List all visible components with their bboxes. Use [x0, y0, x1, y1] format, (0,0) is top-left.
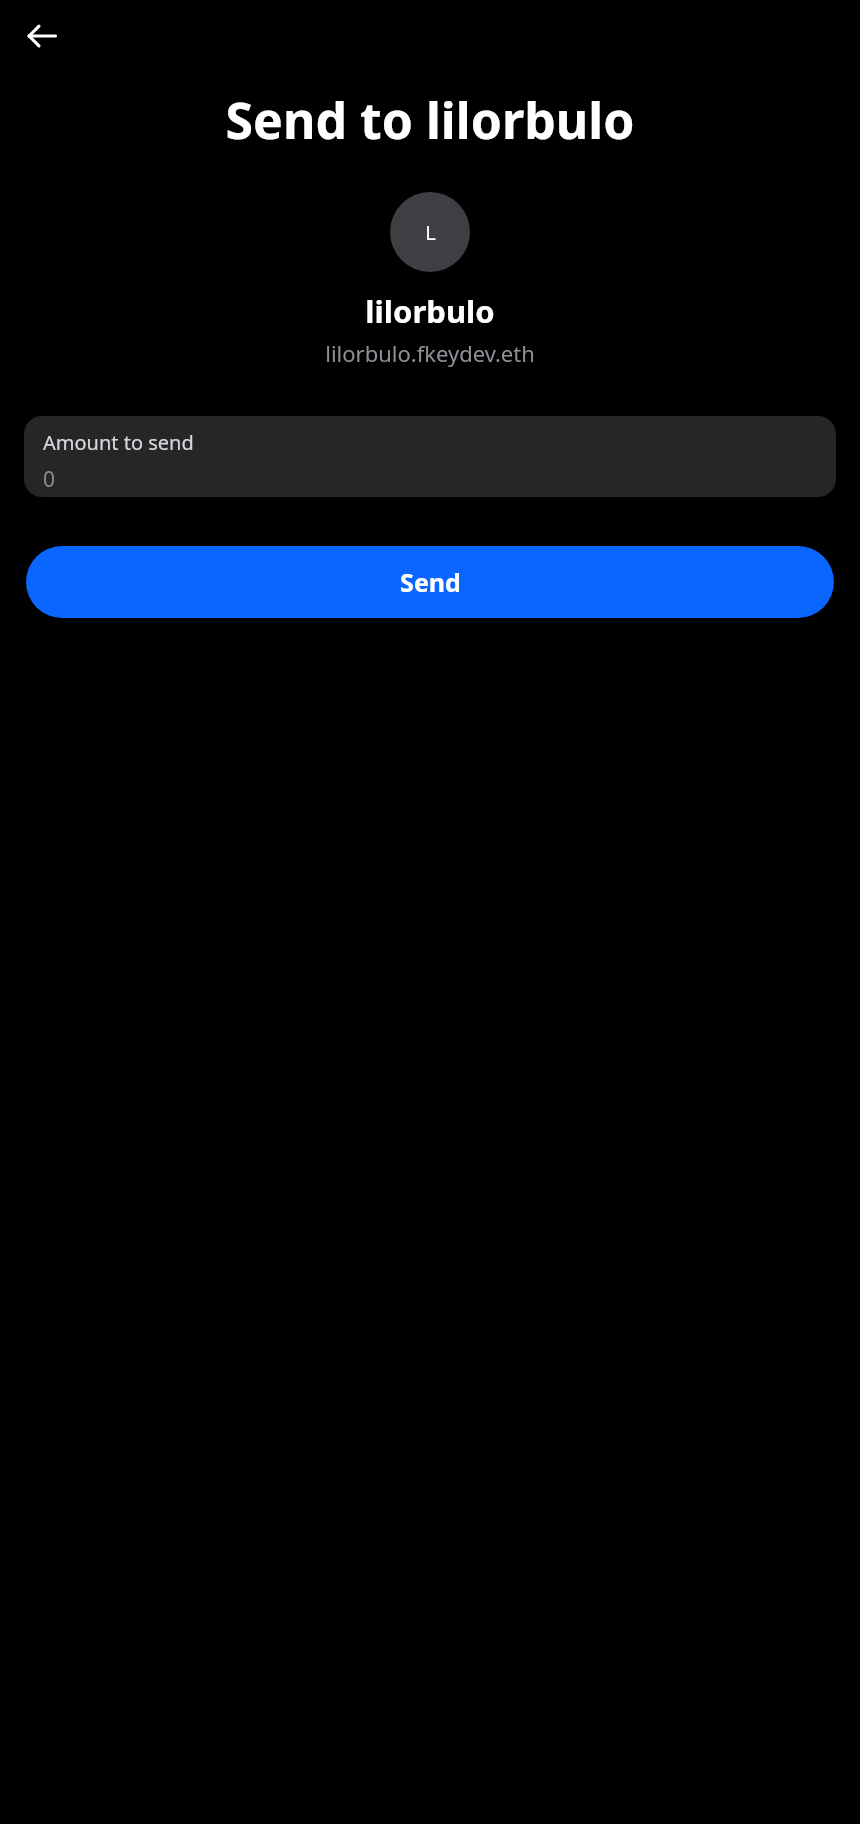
- button[interactable]: Back: [14, 8, 70, 64]
- staticText: Send: [400, 565, 461, 599]
- staticText: lilorbulo.fkeydev.eth: [0, 338, 860, 368]
- staticText: 0: [43, 465, 56, 494]
- staticText: lilorbulo: [0, 290, 860, 332]
- staticText: Send to lilorbulo: [0, 86, 860, 154]
- staticText: Amount to send: [43, 429, 194, 456]
- button[interactable]: Amount to send: [24, 416, 836, 497]
- staticText: L: [425, 219, 436, 246]
- button[interactable]: Send: [26, 546, 834, 618]
